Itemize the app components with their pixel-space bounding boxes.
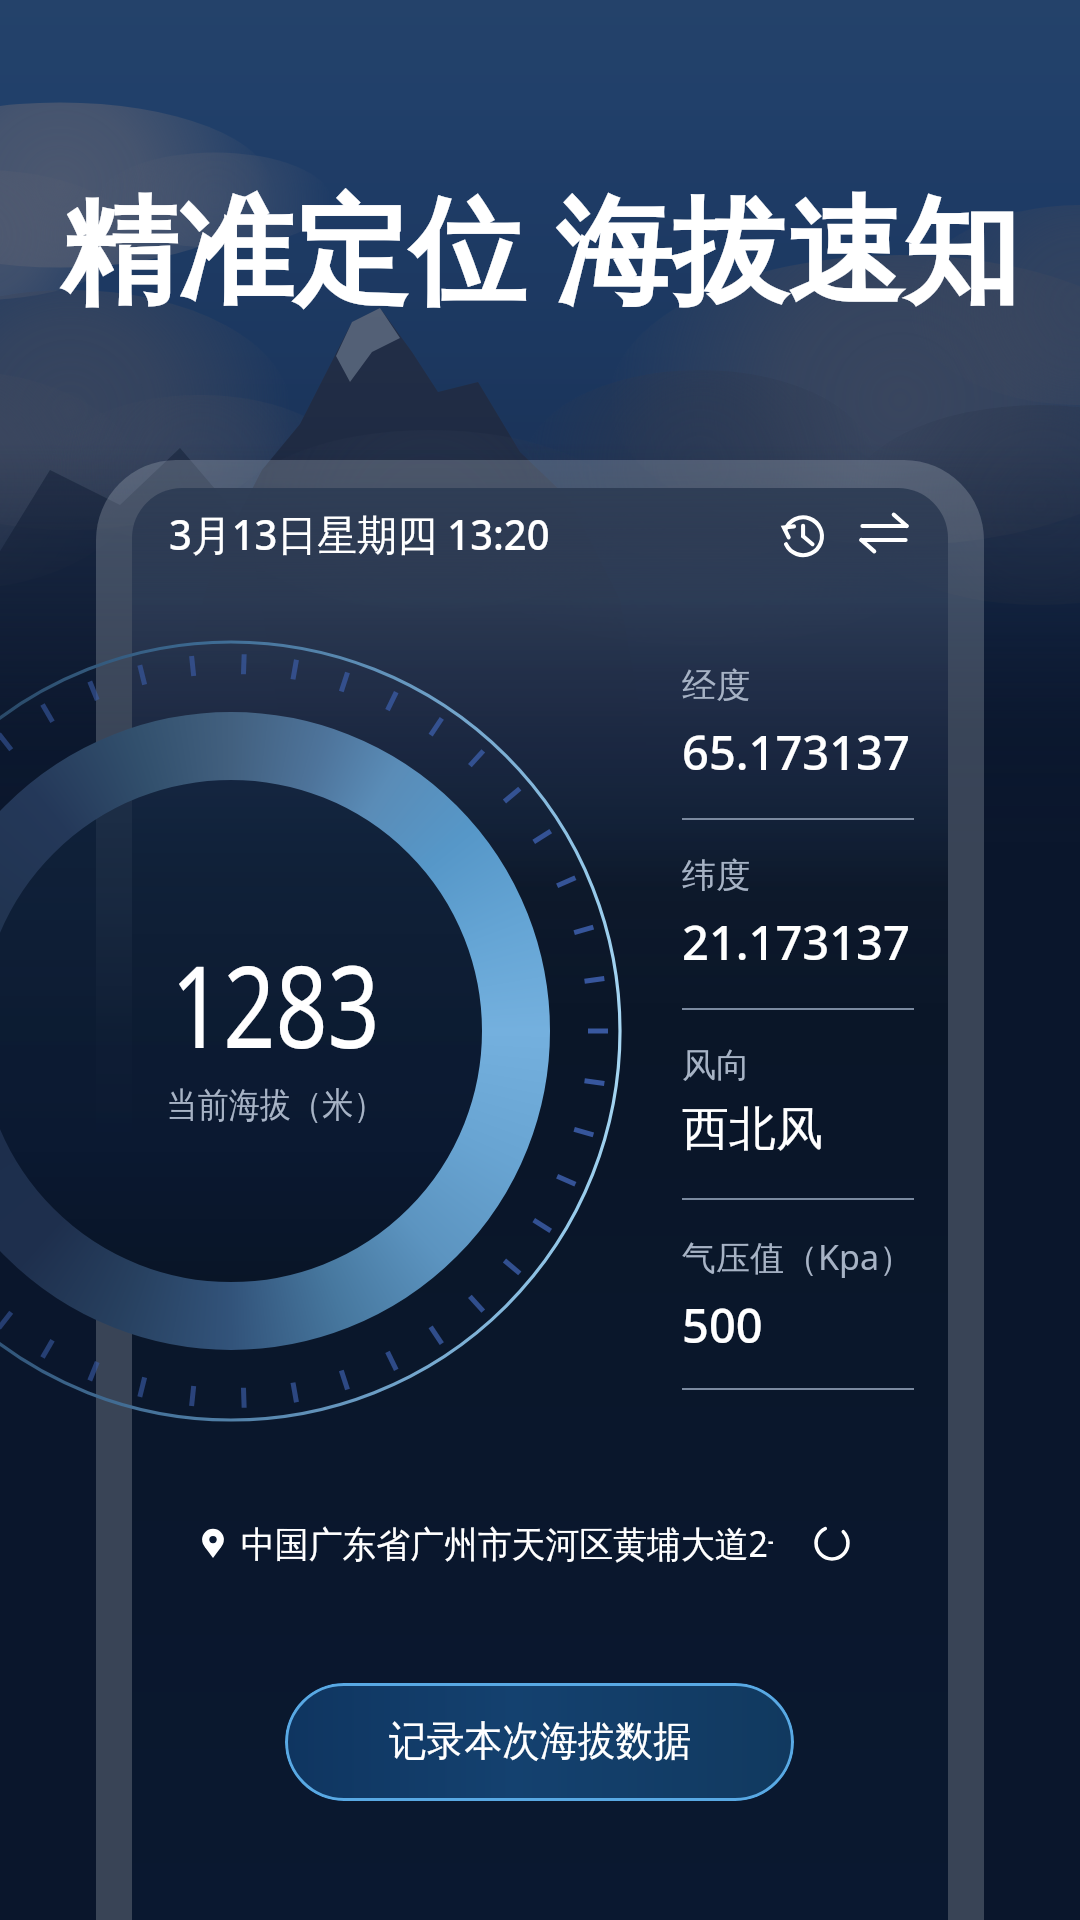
button[interactable]: Switch units: [857, 506, 911, 560]
button[interactable]: 中国广东省广州市天河区黄埔大道2号: [196, 1512, 896, 1574]
staticText: 精准定位 海拔速知: [61, 168, 1020, 326]
staticText: 65.173137: [682, 720, 910, 784]
button[interactable]: History: [775, 506, 829, 560]
staticText: 风向: [682, 1044, 750, 1087]
staticText: 纬度: [682, 854, 750, 897]
staticText: 西北风: [682, 1100, 823, 1159]
staticText: 经度: [682, 664, 750, 707]
staticText: 气压值（Kpa）: [682, 1234, 914, 1280]
staticText: 记录本次海拔数据: [389, 1716, 691, 1768]
staticText: 1283: [171, 926, 380, 1081]
button[interactable]: 记录本次海拔数据: [285, 1683, 794, 1801]
staticText: 500: [682, 1293, 763, 1357]
staticText: 3月13日星期四 13:20: [169, 505, 550, 562]
staticText: 当前海拔（米）: [166, 1083, 384, 1127]
staticText: 中国广东省广州市天河区黄埔大道2号: [241, 1519, 773, 1568]
staticText: 21.173137: [682, 910, 910, 974]
other: Refresh location: [811, 1522, 853, 1564]
